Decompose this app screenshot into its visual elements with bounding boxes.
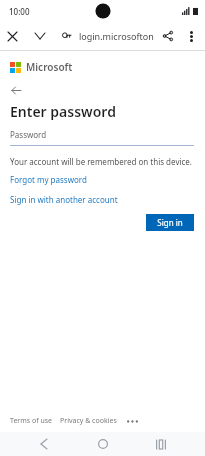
button[interactable]: Forgot my password [10, 174, 87, 185]
staticText: login.microsoftonline.com [79, 30, 156, 42]
button[interactable]: Sign in with another account [10, 194, 118, 205]
staticText: Forgot my password [10, 174, 87, 185]
button[interactable]: Back [29, 432, 59, 456]
button[interactable]: Privacy & cookies [60, 416, 117, 426]
button[interactable]: Password [10, 129, 194, 146]
button[interactable]: Back [8, 82, 24, 98]
staticText: Privacy & cookies [60, 416, 117, 426]
staticText: Your account will be remembered on this … [10, 156, 193, 167]
staticText: Password [10, 129, 47, 140]
staticText: 10:00 [9, 6, 30, 17]
button[interactable]: Share [156, 24, 180, 48]
button[interactable]: Terms of use [10, 416, 53, 426]
button[interactable]: Home [88, 432, 118, 456]
staticText: Sign in with another account [10, 194, 118, 205]
staticText: Sign in [157, 217, 183, 228]
staticText: Microsoft [26, 60, 73, 74]
button[interactable]: More options [180, 25, 202, 47]
button[interactable]: More [125, 416, 139, 426]
staticText: Terms of use [10, 416, 53, 426]
button[interactable]: Expand [28, 24, 52, 48]
button[interactable]: Recent apps [146, 432, 176, 456]
button[interactable]: Site information [56, 26, 76, 46]
button[interactable]: Close [0, 24, 24, 48]
button[interactable]: Sign in [146, 214, 194, 231]
staticText: Enter password [10, 102, 116, 121]
